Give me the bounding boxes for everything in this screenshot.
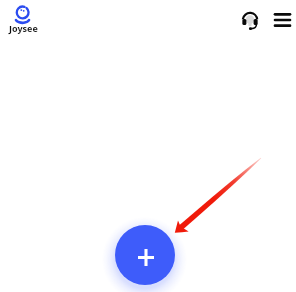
- staticText: Joysee: [9, 22, 38, 34]
- button[interactable]: Joysee: [8, 2, 40, 35]
- button[interactable]: Customer support: [236, 7, 263, 34]
- button[interactable]: Add: [115, 225, 175, 285]
- button[interactable]: Menu: [270, 8, 294, 32]
